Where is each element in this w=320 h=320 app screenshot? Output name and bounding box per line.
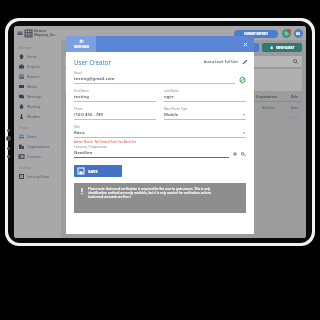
button[interactable]: SUBMIT REPORT [234,30,278,38]
staticText: Projects [27,64,40,69]
staticText: Phone [74,107,83,111]
staticText: (and email accounts are fine.) [88,195,131,199]
staticText: Mobile [164,112,242,118]
staticText: NextGen [74,150,93,156]
staticText: Organization [256,95,277,99]
staticText: Main Phone Type [164,107,188,111]
button[interactable]: Security Roles [14,171,61,181]
staticText: identification method currently availabl… [88,191,212,195]
staticText: Role [74,125,80,129]
staticText: Organizations [27,144,50,149]
staticText: testing@gmail.com [74,76,235,82]
button[interactable]: Projects [14,61,61,71]
staticText: AA [296,32,301,36]
staticText: Users [27,134,37,139]
staticText: Meetings [27,94,42,99]
staticText: SUBMIT REPORT [244,32,269,36]
button[interactable]: Search [293,59,298,64]
staticText: Contacts [27,154,41,159]
button[interactable]: Home [14,51,61,61]
button[interactable]: NEW GUEST [262,43,302,52]
staticText: NextGen [262,106,276,110]
button[interactable]: NEW USER [66,36,96,52]
staticText: (123) 456 - 789 [74,112,156,118]
button[interactable]: Close [242,41,249,48]
staticText: Role [291,95,298,99]
button[interactable]: Organizations [14,141,61,151]
button[interactable]: Reports [14,71,61,81]
staticText: Settings [19,166,32,170]
staticText: Newton [34,29,47,33]
staticText: Adm [291,106,298,110]
button[interactable]: Notifications [282,29,291,38]
button[interactable]: Contacts [14,151,61,161]
staticText: Last Name [164,89,179,93]
button[interactable]: AA [294,29,303,38]
button[interactable]: Users [14,131,61,141]
staticText: Security Roles [27,174,50,179]
staticText: Access Level: Full User [204,60,239,64]
staticText: NEW GUEST [276,46,295,50]
staticText: People [19,126,30,130]
staticText: First Name [74,89,89,93]
staticText: Basic [74,130,242,136]
staticText: Reports [27,74,40,79]
button[interactable]: Worklog [14,101,61,111]
staticText: 1-1 of 1 [287,116,298,120]
staticText: testing [74,94,156,100]
staticText: Manage [19,46,32,50]
staticText: Admin Notice: No Default Role Has Been S… [74,140,137,144]
staticText: SAVE [88,169,98,174]
staticText: Search [69,60,80,64]
staticText: Please note that email verification is r… [88,187,211,191]
button[interactable]: Media [14,81,61,91]
button[interactable]: Search organization [240,152,246,156]
staticText: ngte [164,94,246,100]
button[interactable]: Weather [14,111,61,121]
button[interactable]: Meetings [14,91,61,101]
staticText: Worklog [27,104,41,109]
staticText: Home [27,54,37,59]
staticText: Mapping, Inc. [34,33,56,37]
button[interactable] [235,43,259,52]
button[interactable]: Settings [232,152,238,156]
button[interactable]: SAVE [74,165,122,177]
staticText: User Creator [74,58,111,66]
button[interactable]: Edit access level [242,59,248,65]
button[interactable]: Menu [17,30,23,36]
staticText: Weather [27,114,41,119]
staticText: NEW USER [74,45,89,49]
staticText: Media [27,84,37,89]
staticText: Email [74,71,82,75]
staticText: Company / Organization [74,145,108,149]
